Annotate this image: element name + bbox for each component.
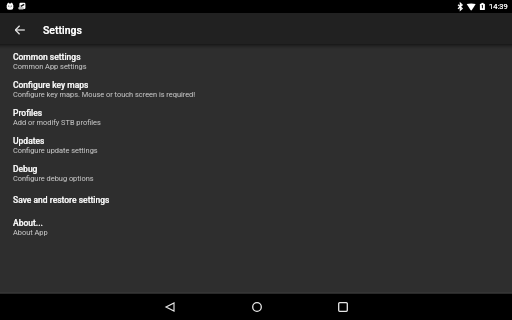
staticText: Profiles <box>13 108 43 118</box>
button[interactable]: Configure key maps <box>0 75 512 103</box>
staticText: Configure key maps <box>13 80 89 90</box>
button[interactable]: Navigate up <box>8 18 32 42</box>
button[interactable]: Debug <box>0 159 512 187</box>
button[interactable]: About... <box>0 213 512 241</box>
staticText: Add or modify STB profiles <box>13 118 101 127</box>
staticText: Common App settings <box>13 62 87 71</box>
staticText: About... <box>13 218 43 228</box>
staticText: Common settings <box>13 52 81 62</box>
staticText: Configure debug options <box>13 174 94 183</box>
button[interactable]: Recent apps <box>329 294 356 320</box>
staticText: Updates <box>13 136 45 146</box>
staticText: Settings <box>43 24 82 36</box>
button[interactable]: Updates <box>0 131 512 159</box>
staticText: About App <box>13 228 48 237</box>
staticText: Configure update settings <box>13 146 98 155</box>
staticText: Debug <box>13 164 38 174</box>
button[interactable]: Common settings <box>0 47 512 75</box>
button[interactable]: Back <box>156 294 183 320</box>
button[interactable]: Profiles <box>0 103 512 131</box>
staticText: Configure key maps. Mouse or touch scree… <box>13 90 196 99</box>
button[interactable]: Home <box>243 294 270 320</box>
staticText: 14:39 <box>489 2 508 11</box>
button[interactable]: Save and restore settings <box>0 187 512 213</box>
staticText: Save and restore settings <box>13 195 110 205</box>
